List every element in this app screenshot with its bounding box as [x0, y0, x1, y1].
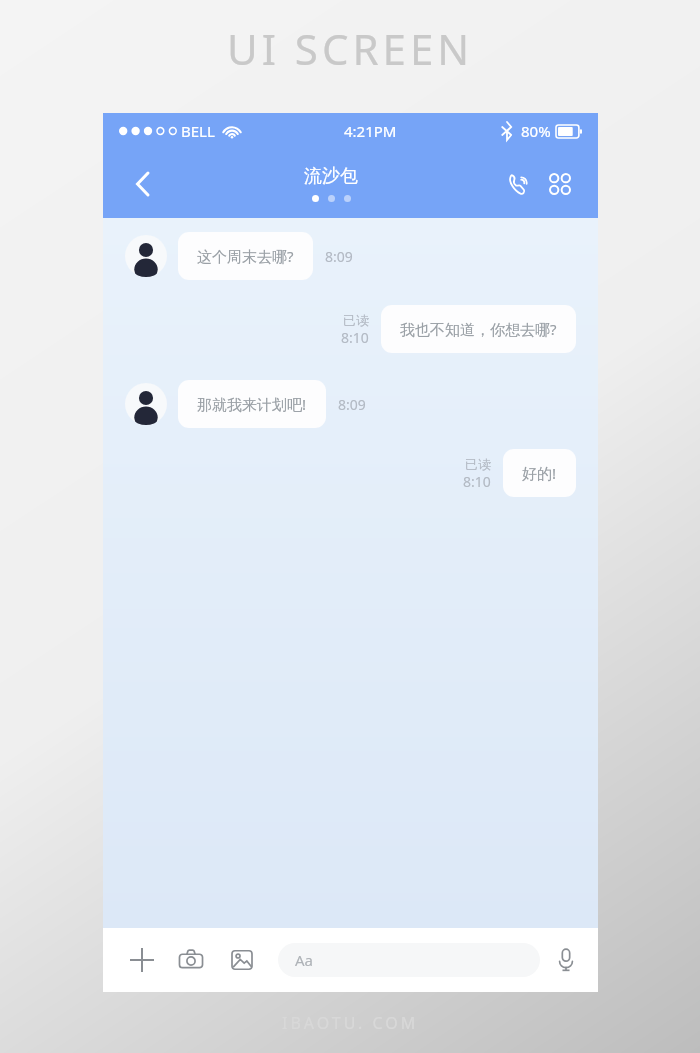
staticText: 这个周末去哪?: [197, 246, 294, 266]
staticText: 流沙包: [304, 165, 358, 188]
staticText: 已读: [465, 456, 491, 472]
staticText: 4:21PM: [344, 121, 397, 141]
button[interactable]: Camera: [174, 943, 208, 977]
staticText: BELL: [181, 121, 215, 141]
staticText: 80%: [521, 121, 551, 141]
button[interactable]: 那就我来计划吧!: [178, 380, 326, 428]
button[interactable]: Add: [125, 943, 159, 977]
button[interactable]: Call: [500, 164, 540, 204]
button[interactable]: 好的!: [503, 449, 576, 497]
button[interactable]: 这个周末去哪?: [178, 232, 313, 280]
staticText: UI SCREEN: [227, 20, 474, 77]
button[interactable]: Back: [121, 163, 163, 205]
staticText: 8:09: [325, 247, 353, 266]
staticText: 好的!: [522, 463, 557, 483]
staticText: 我也不知道，你想去哪?: [400, 319, 557, 339]
staticText: IBAOTU. COM: [282, 1012, 419, 1034]
staticText: 已读: [343, 312, 369, 328]
button[interactable]: Gallery: [225, 943, 259, 977]
button[interactable]: 我也不知道，你想去哪?: [381, 305, 576, 353]
staticText: 那就我来计划吧!: [197, 394, 307, 414]
staticText: Aa: [295, 950, 314, 970]
staticText: 8:10: [463, 472, 491, 491]
button[interactable]: More: [540, 164, 580, 204]
button[interactable]: Voice: [550, 944, 582, 976]
staticText: 8:09: [338, 395, 366, 414]
button[interactable]: Aa: [278, 943, 540, 977]
staticText: 8:10: [341, 328, 369, 347]
